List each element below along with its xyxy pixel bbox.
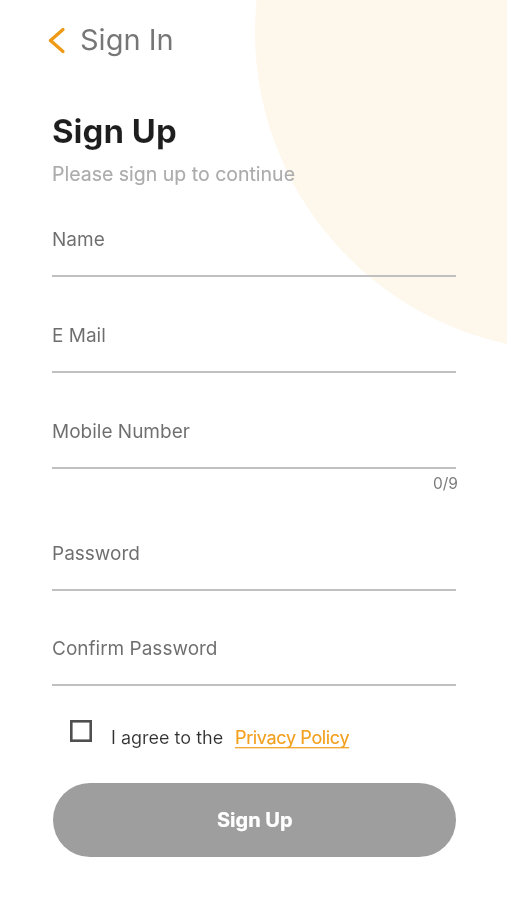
staticText: E Mail: [52, 324, 106, 347]
button[interactable]: Sign Up: [53, 783, 456, 857]
staticText: I agree to the: [111, 727, 224, 749]
button[interactable]: Confirm Password: [52, 637, 456, 684]
staticText: Sign Up: [52, 111, 177, 151]
staticText: Please sign up to continue: [52, 162, 296, 186]
staticText: Name: [52, 228, 105, 251]
staticText: Sign Up: [217, 808, 293, 832]
staticText: Password: [52, 542, 140, 565]
button[interactable]: Sign In: [34, 8, 192, 65]
button[interactable]: Mobile Number: [52, 420, 456, 467]
staticText: Confirm Password: [52, 637, 218, 660]
staticText: Mobile Number: [52, 420, 190, 443]
staticText: 0/9: [433, 474, 458, 493]
staticText: Sign In: [80, 22, 174, 57]
button[interactable]: Privacy Policy: [235, 727, 350, 749]
button[interactable]: E Mail: [52, 324, 456, 371]
button[interactable]: Password: [52, 542, 456, 589]
button[interactable]: I agree to the terms checkbox: [66, 716, 96, 746]
button[interactable]: Name: [52, 228, 456, 275]
